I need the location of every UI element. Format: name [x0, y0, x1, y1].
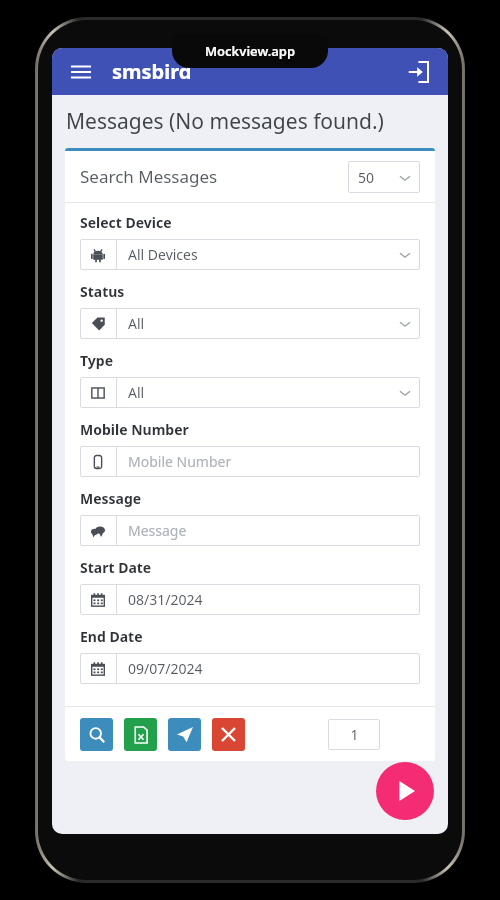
staticText: 50 [358, 168, 375, 187]
button[interactable]: 50 [348, 161, 420, 193]
staticText: All [128, 314, 145, 333]
staticText: Message [80, 489, 142, 508]
button[interactable]: All [80, 377, 420, 408]
staticText: 1 [350, 725, 359, 744]
staticText: Message [128, 521, 187, 540]
button[interactable]: All Devices [80, 239, 420, 270]
staticText: 09/07/2024 [128, 659, 203, 678]
button[interactable]: Mobile Number [80, 446, 420, 477]
staticText: All [128, 383, 145, 402]
staticText: End Date [80, 627, 143, 646]
button[interactable]: Delete [212, 718, 245, 751]
button[interactable]: All [80, 308, 420, 339]
staticText: Mockview.app [205, 42, 296, 60]
staticText: Status [80, 282, 125, 301]
button[interactable]: Export to Excel [124, 718, 157, 751]
staticText: smsbird [112, 58, 192, 85]
button[interactable]: Message [80, 515, 420, 546]
staticText: Messages (No messages found.) [66, 107, 384, 136]
staticText: All Devices [128, 245, 198, 264]
button[interactable]: 1 [328, 719, 380, 750]
button[interactable]: Search [80, 718, 113, 751]
button[interactable]: Menu [64, 55, 98, 89]
button[interactable]: Run [376, 762, 434, 820]
staticText: Search Messages [80, 165, 218, 188]
staticText: 08/31/2024 [128, 590, 203, 609]
button[interactable]: Send [168, 718, 201, 751]
staticText: Type [80, 351, 113, 370]
button[interactable]: Logout [400, 54, 436, 90]
button[interactable]: 09/07/2024 [80, 653, 420, 684]
staticText: Select Device [80, 213, 172, 232]
button[interactable]: 08/31/2024 [80, 584, 420, 615]
staticText: Mobile Number [80, 420, 189, 439]
staticText: Start Date [80, 558, 152, 577]
staticText: Mobile Number [128, 452, 232, 471]
